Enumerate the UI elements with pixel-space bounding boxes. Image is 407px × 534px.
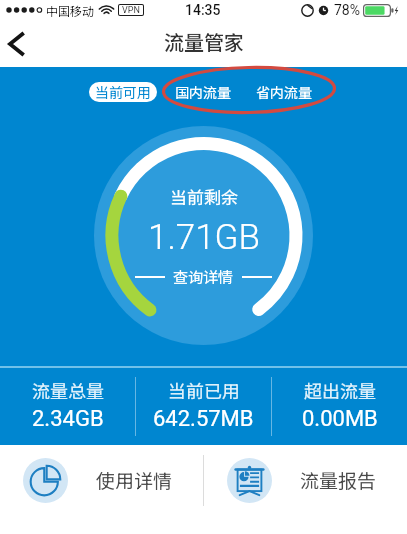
staticText: 使用详情 — [96, 466, 173, 494]
staticText: 14:35 — [185, 2, 221, 18]
staticText: 642.57MB — [153, 406, 254, 432]
staticText: 当前可用 — [95, 82, 151, 102]
staticText: 查询详情 — [173, 266, 234, 288]
button[interactable]: 使用详情 — [0, 445, 203, 515]
staticText: 0.00MB — [302, 406, 378, 432]
staticText: 超出流量 — [304, 377, 376, 403]
staticText: 国内流量 — [175, 82, 231, 102]
staticText: 流量报告 — [300, 466, 377, 494]
button[interactable]: 流量总量 — [0, 368, 135, 432]
button[interactable]: 流量报告 — [204, 445, 407, 515]
button[interactable]: Back — [0, 20, 38, 67]
button[interactable]: 当前可用 — [89, 82, 157, 102]
staticText: 当前已用 — [168, 377, 240, 403]
button[interactable]: 当前已用 — [136, 368, 271, 432]
staticText: 流量管家 — [164, 27, 244, 56]
button[interactable]: 省内流量 — [253, 80, 315, 104]
staticText: 省内流量 — [256, 82, 312, 102]
staticText: 当前剩余 — [170, 184, 238, 209]
staticText: VPN — [122, 5, 140, 15]
staticText: 2.34GB — [32, 406, 104, 432]
button[interactable]: 超出流量 — [272, 368, 407, 432]
staticText: 中国移动 — [46, 2, 95, 19]
button[interactable]: 国内流量 — [172, 80, 234, 104]
staticText: 流量总量 — [32, 377, 104, 403]
staticText: 1.71GB — [148, 217, 260, 258]
staticText: 78% — [334, 2, 360, 18]
